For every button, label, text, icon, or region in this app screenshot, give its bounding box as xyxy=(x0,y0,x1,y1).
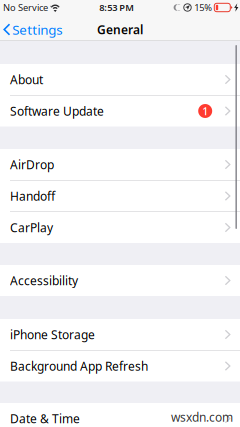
staticText: Handoff xyxy=(10,188,55,204)
button[interactable]: Accessibility xyxy=(0,265,240,296)
button[interactable]: About xyxy=(0,64,240,95)
staticText: 1 xyxy=(202,104,208,118)
button[interactable]: iPhone Storage xyxy=(0,319,240,350)
staticText: Date & Time xyxy=(10,410,80,426)
staticText: 15% xyxy=(194,1,212,14)
staticText: Background App Refresh xyxy=(10,358,148,374)
staticText: 8:53 PM xyxy=(99,1,134,14)
staticText: Accessibility xyxy=(10,272,78,288)
staticText: About xyxy=(10,71,43,87)
staticText: iPhone Storage xyxy=(10,326,95,342)
staticText: Software Update xyxy=(10,103,104,119)
button[interactable]: CarPlay xyxy=(0,212,240,243)
button[interactable]: Settings xyxy=(0,18,66,41)
button[interactable]: AirDrop xyxy=(0,149,240,180)
staticText: wsxdn.com xyxy=(171,409,233,425)
staticText: Settings xyxy=(12,21,62,38)
button[interactable]: Handoff xyxy=(0,180,240,211)
button[interactable]: Software Update xyxy=(0,95,240,126)
button[interactable]: Date & Time xyxy=(0,403,240,427)
staticText: General xyxy=(97,21,143,37)
staticText: No Service xyxy=(3,1,48,14)
button[interactable]: Background App Refresh xyxy=(0,350,240,381)
staticText: AirDrop xyxy=(10,156,54,172)
staticText: CarPlay xyxy=(10,219,53,235)
